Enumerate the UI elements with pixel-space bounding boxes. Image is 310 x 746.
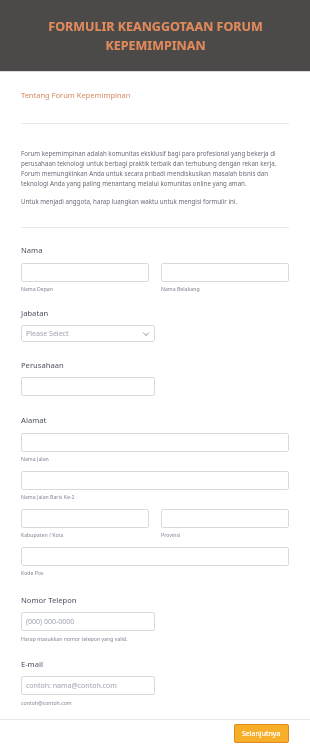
- button[interactable]: [161, 263, 289, 282]
- staticText: Provinsi: [161, 531, 181, 538]
- staticText: contoh@contoh.com: [21, 699, 72, 706]
- staticText: Nama Belakang: [161, 285, 200, 292]
- staticText: Selanjutnya: [242, 729, 281, 739]
- button[interactable]: [21, 377, 155, 396]
- button[interactable]: [21, 433, 289, 452]
- staticText: Jabatan: [21, 308, 49, 318]
- staticText: Nama: [21, 245, 43, 255]
- staticText: Nama Depan: [21, 285, 53, 292]
- staticText: Perusahaan: [21, 360, 64, 370]
- staticText: Alamat: [21, 415, 47, 425]
- button[interactable]: [161, 509, 289, 528]
- staticText: contoh: nama@contoh.com: [26, 681, 117, 691]
- staticText: Kode Pos: [21, 569, 44, 576]
- staticText: Nomor Telepon: [21, 595, 77, 605]
- button[interactable]: contoh: nama@contoh.com: [21, 676, 155, 695]
- button[interactable]: [21, 471, 289, 490]
- button[interactable]: [21, 547, 289, 566]
- staticText: Nama Jalan: [21, 455, 49, 462]
- button[interactable]: Selanjutnya: [234, 724, 289, 743]
- staticText: Untuk menjadi anggota, harap luangkan wa…: [21, 197, 238, 205]
- staticText: Tentang Forum Kepemimpinan: [21, 90, 131, 100]
- staticText: FORMULIR KEANGGOTAAN FORUM KEPEMIMPINAN: [48, 18, 263, 54]
- staticText: E-mail: [21, 659, 44, 669]
- button[interactable]: [21, 263, 149, 282]
- staticText: Nama Jalan Baris Ke-2: [21, 493, 75, 500]
- staticText: (000) 000-0000: [26, 617, 75, 627]
- button[interactable]: Please Select: [21, 325, 155, 342]
- button[interactable]: [21, 509, 149, 528]
- staticText: Kabupaten / Kota: [21, 531, 64, 538]
- staticText: Harap masukkan nomor telepon yang valid.: [21, 635, 128, 642]
- button[interactable]: (000) 000-0000: [21, 612, 155, 631]
- staticText: Forum kepemimpinan adalah komunitas eksk…: [21, 149, 289, 188]
- staticText: Please Select: [26, 329, 69, 339]
